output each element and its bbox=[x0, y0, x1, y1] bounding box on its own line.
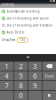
button[interactable]: 0 bbox=[14, 91, 28, 100]
staticText: 3 bbox=[33, 62, 37, 71]
button[interactable]: 3 bbox=[28, 61, 42, 71]
staticText: Automatic call recording bbox=[7, 10, 40, 13]
button[interactable] bbox=[28, 91, 42, 100]
staticText: Done bbox=[45, 73, 54, 78]
staticText: Auto Delete bbox=[7, 31, 25, 34]
staticText: 1 bbox=[5, 62, 9, 71]
staticText: 100 bbox=[19, 38, 25, 42]
button[interactable]: 4 bbox=[0, 71, 14, 80]
staticText: Delay Time bbox=[1, 38, 15, 42]
button[interactable]: 2 bbox=[14, 61, 28, 71]
button[interactable]: Backspace bbox=[42, 61, 56, 71]
staticText: 5 bbox=[19, 71, 23, 80]
staticText: 2 bbox=[19, 62, 23, 71]
button[interactable] bbox=[0, 91, 14, 100]
button[interactable]: Hide keyboard bbox=[0, 54, 56, 61]
staticText: 7 bbox=[5, 81, 9, 90]
staticText: 9 bbox=[33, 81, 37, 90]
button[interactable]: 8 bbox=[14, 81, 28, 90]
button[interactable]: Switch keyboard bbox=[42, 91, 56, 100]
staticText: End of Recording with Vibration bbox=[7, 24, 53, 27]
button[interactable]: Done bbox=[42, 71, 56, 80]
staticText: 0 bbox=[19, 91, 23, 100]
staticText: 8 bbox=[19, 81, 23, 90]
button[interactable]: 9 bbox=[28, 81, 42, 90]
button[interactable]: Auto Delete bbox=[0, 29, 56, 36]
staticText: Settings bbox=[1, 1, 14, 7]
button[interactable]: 7 bbox=[0, 81, 14, 90]
button[interactable]: 5 bbox=[14, 71, 28, 80]
button[interactable]: 1 bbox=[0, 61, 14, 71]
button[interactable]: 100 bbox=[17, 37, 28, 42]
button[interactable]: End of Recording with Vibration bbox=[0, 22, 56, 29]
staticText: 6 bbox=[33, 71, 37, 80]
staticText: End of Recording with Sound bbox=[7, 17, 49, 20]
staticText: 4 bbox=[5, 71, 9, 80]
button[interactable]: End of Recording with Sound bbox=[0, 15, 56, 22]
button[interactable]: Automatic call recording bbox=[0, 8, 56, 15]
button[interactable]: 6 bbox=[28, 71, 42, 80]
button[interactable] bbox=[42, 81, 56, 90]
